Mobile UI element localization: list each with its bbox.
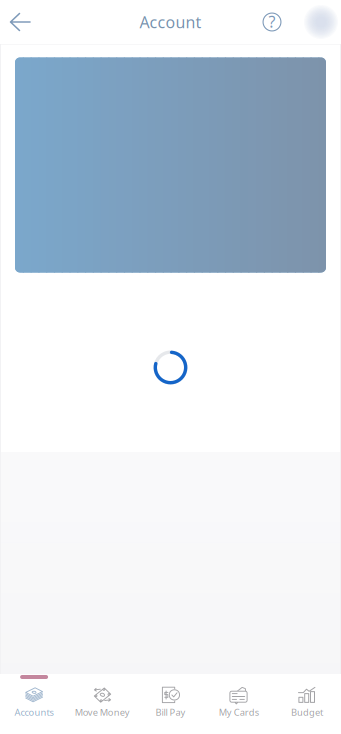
staticText: My Cards xyxy=(219,706,259,718)
staticText: ? xyxy=(268,11,275,32)
staticText: Move Money xyxy=(75,706,130,718)
staticText: Budget xyxy=(291,706,323,718)
button[interactable]: Move Money xyxy=(68,674,136,734)
button[interactable]: My Cards xyxy=(205,674,273,734)
staticText: Accounts xyxy=(15,706,54,718)
button[interactable]: Back xyxy=(0,0,42,44)
button[interactable]: Budget xyxy=(273,674,341,734)
button[interactable]: Accounts xyxy=(0,674,68,734)
button[interactable]: Help xyxy=(254,0,290,44)
staticText: Account xyxy=(139,11,201,33)
button[interactable]: Profile xyxy=(301,0,341,44)
staticText: Bill Pay xyxy=(155,706,185,718)
button[interactable]: Bill Pay xyxy=(136,674,205,734)
